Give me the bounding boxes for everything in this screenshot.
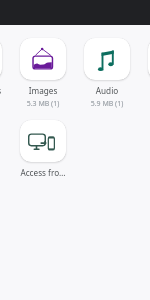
staticText: 5.3 MB (1): [20, 99, 66, 109]
button[interactable]: [0, 38, 2, 80]
other: Access from computer: [28, 126, 58, 156]
staticText: Documents: [0, 85, 2, 96]
other: Audio: [95, 47, 119, 71]
button[interactable]: Audio: [84, 38, 130, 80]
staticText: 5.9 MB (1): [84, 99, 130, 109]
button[interactable]: [148, 38, 150, 80]
button[interactable]: Images: [20, 38, 66, 80]
button[interactable]: Access from computer: [20, 120, 66, 162]
staticText: Images: [20, 85, 66, 96]
other: Images: [31, 47, 55, 71]
staticText: Access fro…: [20, 167, 66, 178]
staticText: Audio: [84, 85, 130, 96]
